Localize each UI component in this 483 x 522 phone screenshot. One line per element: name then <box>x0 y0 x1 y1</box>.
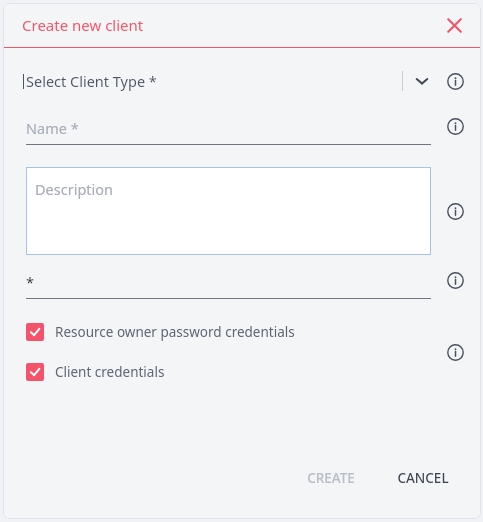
staticText: * <box>26 272 34 292</box>
staticText: Client credentials <box>55 363 165 381</box>
staticText: Resource owner password credentials <box>55 323 295 341</box>
button[interactable]: Information <box>443 199 467 223</box>
button[interactable]: Description <box>26 167 431 255</box>
button[interactable]: Information <box>443 340 467 364</box>
button[interactable]: Name * <box>26 118 431 145</box>
button[interactable]: Information <box>443 69 467 93</box>
button[interactable]: Client credentials <box>26 361 165 383</box>
button[interactable]: Close <box>440 11 468 39</box>
button[interactable]: Select Client Type * <box>23 66 437 96</box>
button[interactable]: * <box>26 272 431 299</box>
staticText: Create new client <box>22 15 144 35</box>
button[interactable]: Information <box>443 268 467 292</box>
button[interactable]: Resource owner password credentials <box>26 321 295 343</box>
button[interactable]: CANCEL <box>387 463 459 493</box>
staticText: Name * <box>26 118 79 138</box>
staticText: CANCEL <box>397 469 449 487</box>
staticText: Description <box>35 179 114 199</box>
staticText: CREATE <box>307 469 355 487</box>
button[interactable]: Information <box>443 114 467 138</box>
button[interactable]: CREATE <box>297 463 365 493</box>
staticText: Select Client Type * <box>26 71 157 91</box>
